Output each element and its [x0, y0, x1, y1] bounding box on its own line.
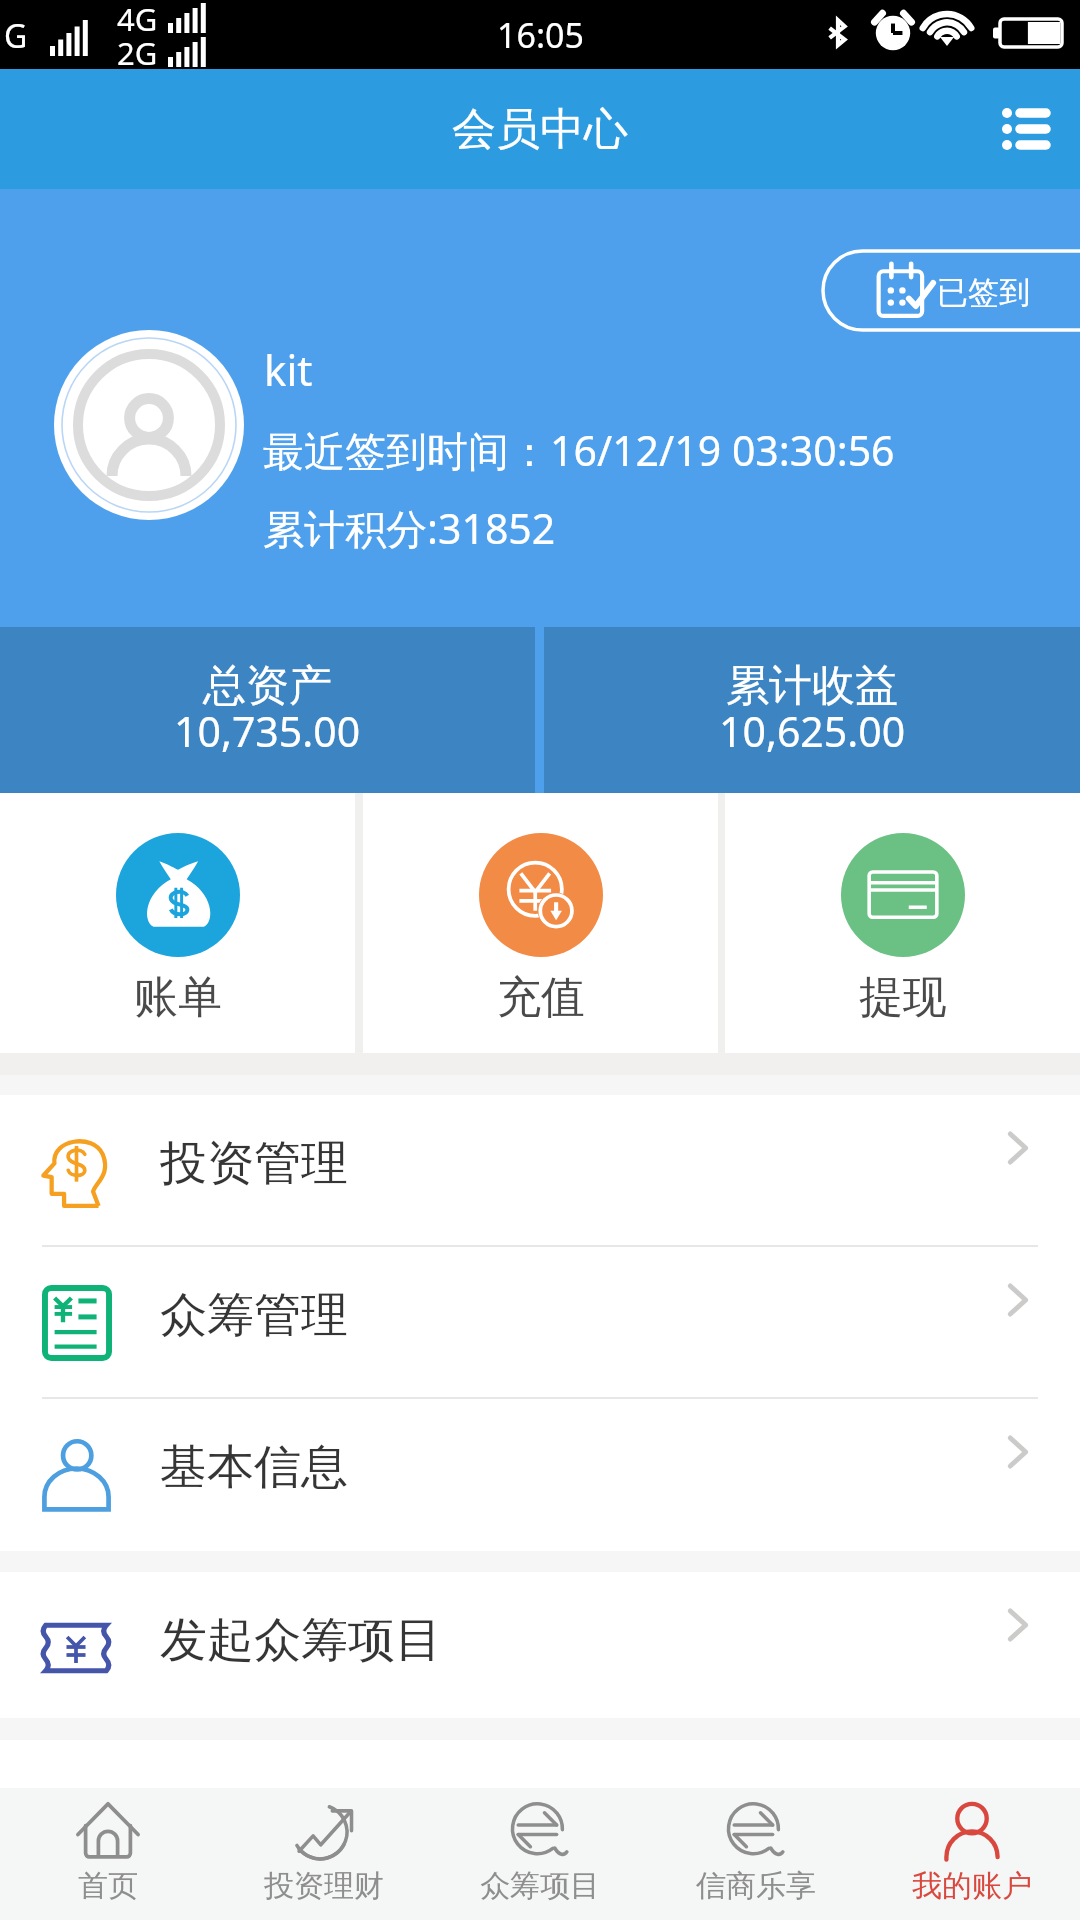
staticText: kit — [264, 341, 313, 398]
staticText: 信商乐享 — [696, 1867, 816, 1905]
staticText: 4G — [117, 0, 158, 40]
staticText: 10,625.00 — [719, 703, 906, 759]
staticText: 10,735.00 — [174, 703, 361, 759]
button[interactable]: 账单 — [0, 793, 355, 1053]
staticText: 累计积分:31852 — [263, 500, 556, 556]
staticText: 已签到 — [937, 273, 1030, 312]
staticText: 提现 — [859, 970, 947, 1025]
button[interactable]: 投资理财 — [216, 1788, 432, 1920]
button[interactable]: 信商乐享 — [648, 1788, 864, 1920]
staticText: 投资管理 — [160, 1134, 348, 1193]
staticText: 充值 — [497, 970, 585, 1025]
button[interactable]: 众筹管理 — [0, 1247, 1080, 1397]
button[interactable]: 众筹项目 — [432, 1788, 648, 1920]
staticText: 最近签到时间：16/12/19 03:30:56 — [263, 422, 895, 478]
button[interactable]: 我的账户 — [864, 1788, 1080, 1920]
staticText: 首页 — [78, 1867, 138, 1905]
staticText: G — [4, 14, 28, 58]
button[interactable]: 基本信息 — [0, 1399, 1080, 1551]
staticText: 我的账户 — [912, 1867, 1032, 1905]
button[interactable]: Menu — [978, 81, 1074, 177]
staticText: 众筹项目 — [480, 1867, 600, 1905]
staticText: 16:05 — [497, 12, 584, 58]
staticText: 账单 — [134, 970, 222, 1025]
staticText: 众筹管理 — [160, 1286, 348, 1345]
staticText: 发起众筹项目 — [160, 1611, 442, 1670]
staticText: 会员中心 — [452, 102, 628, 157]
button[interactable]: 充值 — [363, 793, 718, 1053]
staticText: 基本信息 — [160, 1438, 348, 1497]
staticText: 累计收益 — [726, 659, 898, 713]
button[interactable]: 投资管理 — [0, 1095, 1080, 1245]
staticText: 投资理财 — [264, 1867, 384, 1905]
staticText: 2G — [117, 32, 158, 74]
button[interactable]: 首页 — [0, 1788, 216, 1920]
button[interactable]: 总资产 — [0, 627, 535, 793]
button[interactable]: 提现 — [725, 793, 1080, 1053]
button[interactable]: 累计收益 — [544, 627, 1080, 793]
button[interactable]: 发起众筹项目 — [0, 1572, 1080, 1718]
button[interactable]: Profile photo — [49, 325, 249, 525]
staticText: 总资产 — [203, 659, 332, 713]
button[interactable]: 已签到 — [821, 249, 1080, 332]
